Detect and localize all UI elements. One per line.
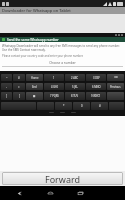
button[interactable]: *: [55, 102, 72, 110]
button[interactable]: [: [1, 92, 12, 100]
button[interactable]: 0: [73, 102, 90, 110]
staticText: 1: [53, 76, 55, 80]
staticText: 3 DEF: [93, 76, 100, 80]
staticText: 0: [81, 104, 83, 108]
button[interactable]: key: [1, 102, 36, 110]
staticText: Send the same Whatsapp number: [7, 38, 59, 42]
staticText: [: [6, 94, 7, 98]
button[interactable]: Home: [26, 74, 43, 81]
staticText: 5 JKL: [72, 85, 78, 89]
staticText: Downloader for Whatsapp on Tablet: [2, 8, 71, 13]
staticText: Whatsapp Downloader will send to any fre…: [2, 44, 123, 52]
button[interactable]: #: [13, 74, 25, 81]
button[interactable]: Forward: [2, 172, 123, 185]
staticText: 8 TUV: [71, 94, 79, 98]
button[interactable]: 6 MNO: [86, 83, 106, 90]
staticText: ]: [19, 94, 20, 98]
staticText: Home: [31, 76, 39, 80]
button[interactable]: ~: [1, 74, 12, 81]
button[interactable]: -: [1, 83, 12, 90]
button[interactable]: Downloader for Whatsapp on Tablet: [0, 7, 125, 14]
button[interactable]: Home: [44, 188, 56, 198]
button[interactable]: Choose a number: [2, 61, 123, 65]
staticText: -: [6, 85, 7, 89]
staticText: Forward: [45, 173, 81, 185]
button[interactable]: Previous: [107, 83, 124, 90]
other: App icon: [2, 38, 5, 41]
staticText: Please contact your country code and ent…: [2, 54, 84, 58]
button[interactable]: End: [26, 83, 43, 90]
button[interactable]: Back: [14, 188, 26, 198]
staticText: 4 GHI: [51, 85, 58, 89]
button[interactable]: Recents: [74, 188, 86, 198]
button[interactable]: 7 PQRS: [44, 92, 64, 100]
staticText: 7 PQRS: [50, 94, 59, 98]
button[interactable]: 2 ABC: [65, 74, 85, 81]
button[interactable]: key: [107, 92, 124, 100]
staticText: #: [18, 76, 20, 80]
staticText: 2 ABC: [71, 76, 79, 80]
staticText: Previous: [110, 85, 121, 89]
button[interactable]: key: [109, 102, 124, 110]
button[interactable]: 5 JKL: [65, 83, 85, 90]
button[interactable]: ■: [26, 92, 43, 100]
button[interactable]: App icon: [0, 37, 125, 42]
staticText: 6 MNO: [92, 85, 101, 89]
button[interactable]: 9 WXYZ: [86, 92, 106, 100]
staticText: #: [99, 104, 101, 108]
button[interactable]: 1: [44, 74, 64, 81]
button[interactable]: 4 GHI: [44, 83, 64, 90]
staticText: ⌫: [114, 76, 118, 79]
button[interactable]: key: [37, 102, 54, 110]
staticText: End: [32, 85, 37, 89]
button[interactable]: ⌫: [107, 74, 124, 81]
button[interactable]: 3 DEF: [86, 74, 106, 81]
staticText: ■: [33, 95, 36, 98]
staticText: 9 WXYZ: [91, 94, 101, 98]
staticText: *: [63, 104, 65, 108]
staticText: =: [18, 85, 20, 89]
staticText: ~: [6, 76, 8, 80]
button[interactable]: ]: [13, 92, 25, 100]
button[interactable]: 8 TUV: [65, 92, 85, 100]
button[interactable]: #: [91, 102, 108, 110]
button[interactable]: =: [13, 83, 25, 90]
